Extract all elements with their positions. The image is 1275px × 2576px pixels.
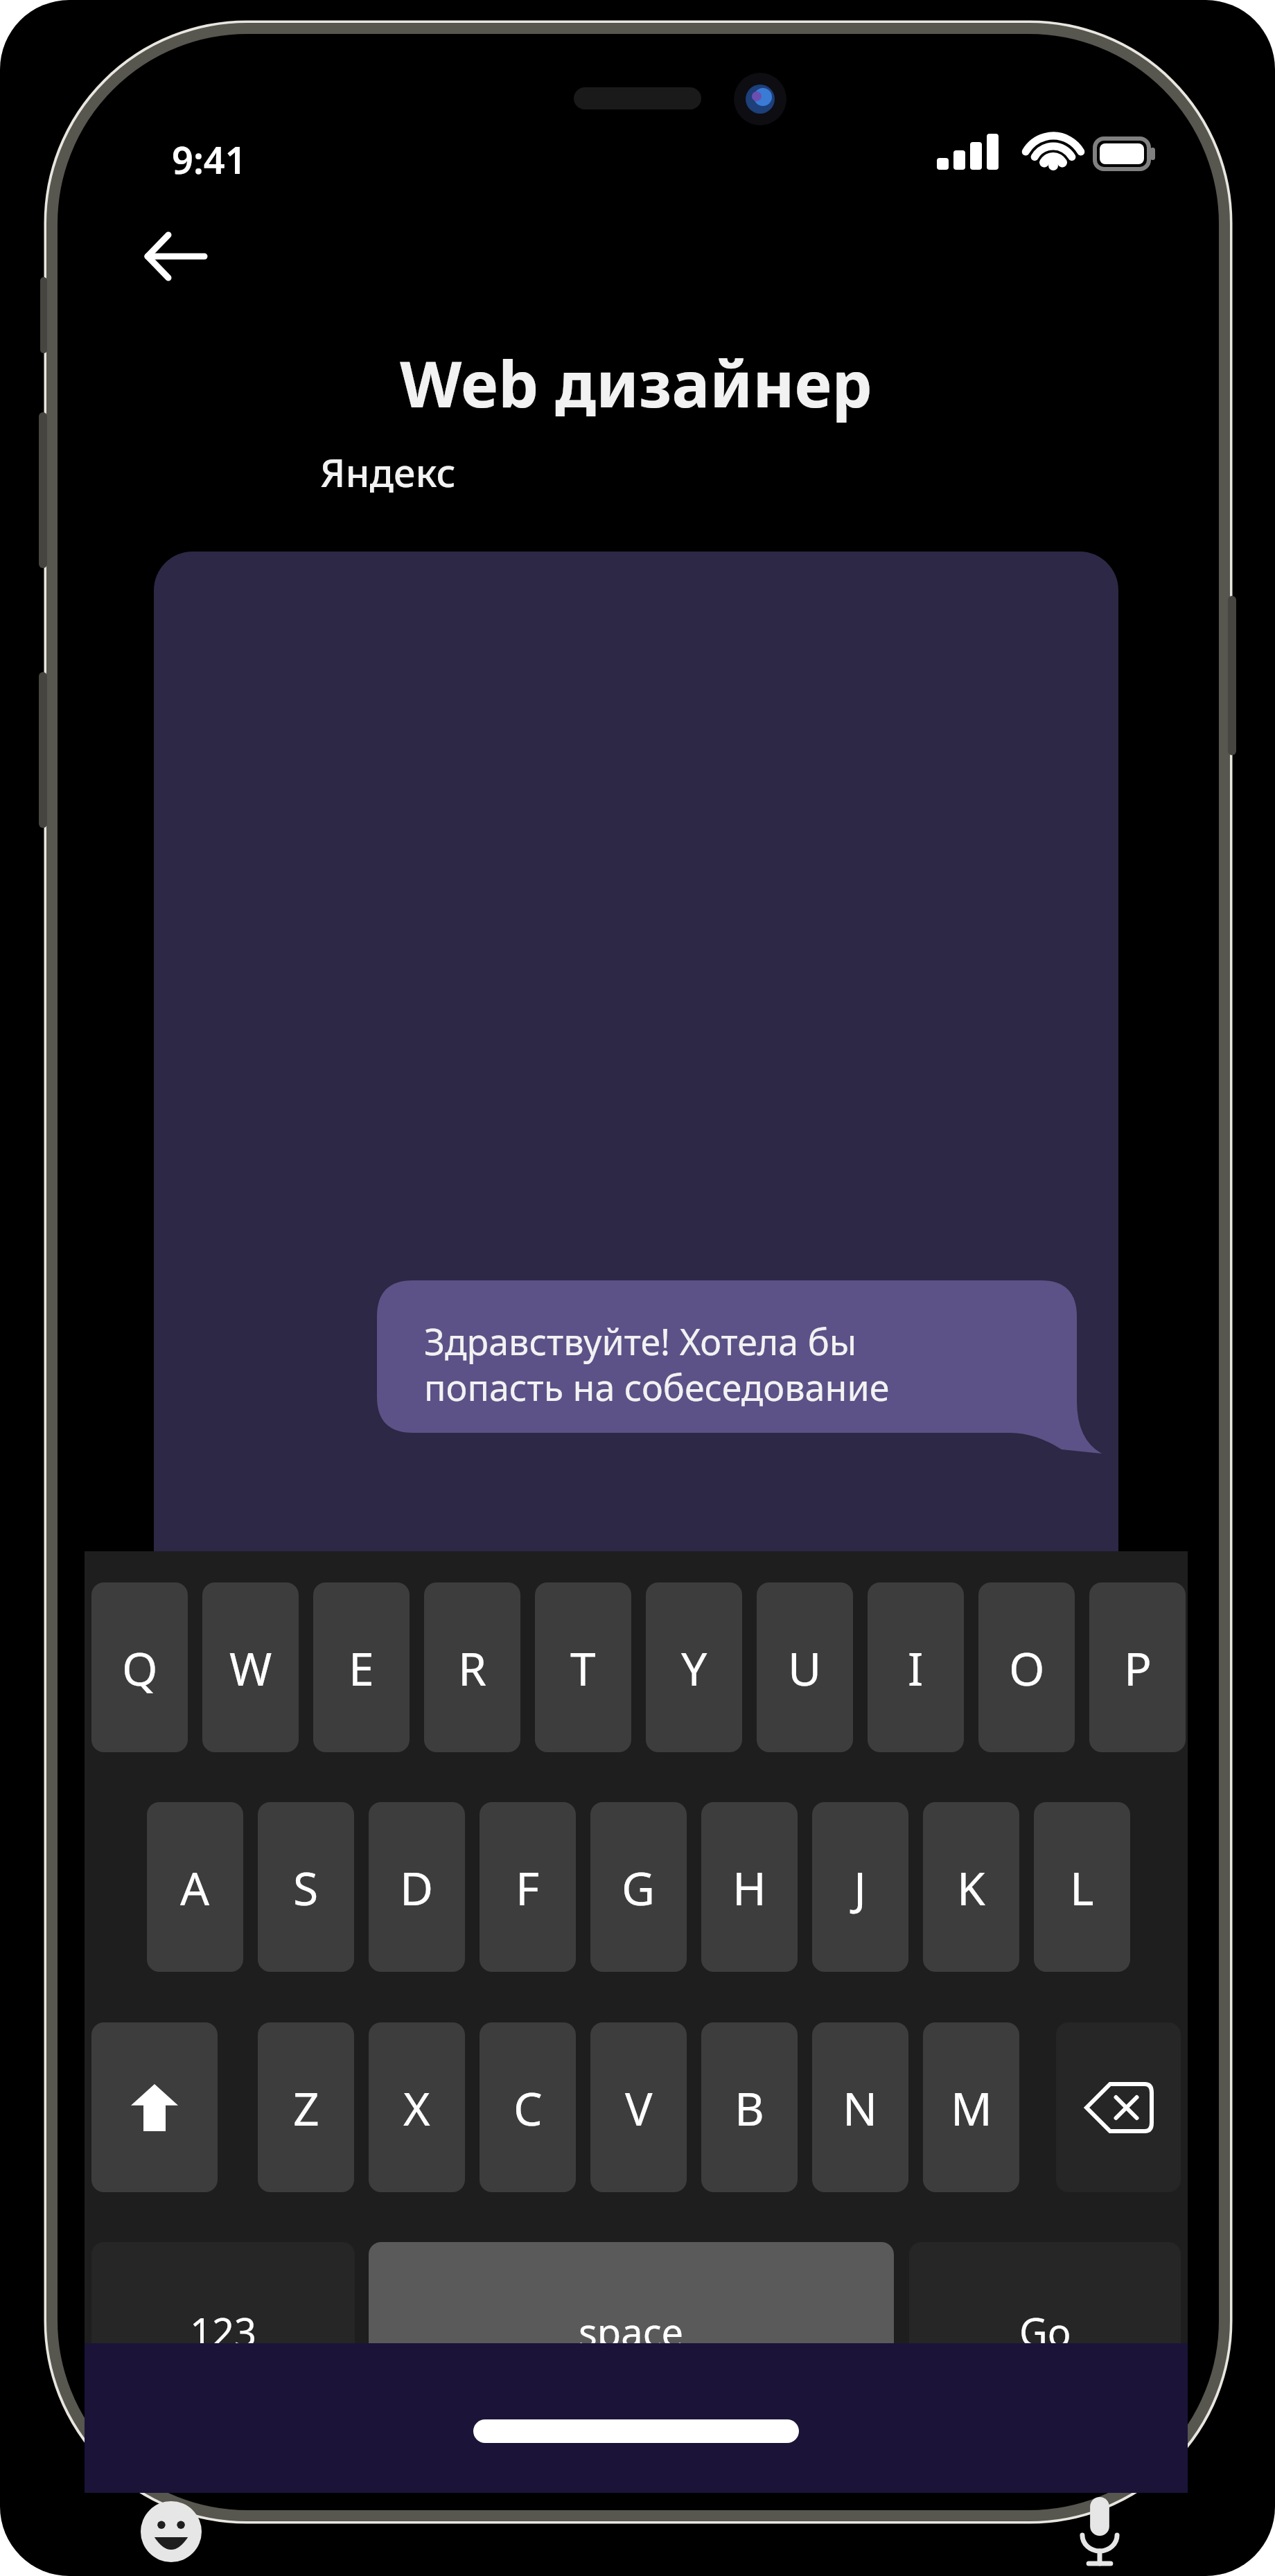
button[interactable]: Go — [909, 2242, 1181, 2421]
staticText: O — [1009, 1637, 1045, 1699]
staticText: Здравствуйте! Хотела бы попасть на собес… — [424, 1316, 890, 1411]
button[interactable]: X — [369, 2022, 465, 2192]
button[interactable]: S — [258, 1802, 354, 1972]
button[interactable]: Emoji — [119, 2480, 223, 2576]
staticText: T — [570, 1637, 596, 1699]
button[interactable]: O — [978, 1582, 1075, 1752]
button[interactable]: L — [1034, 1802, 1130, 1972]
staticText: I — [908, 1637, 924, 1699]
staticText: space — [579, 2305, 684, 2358]
staticText: X — [403, 2076, 430, 2139]
button[interactable]: B — [701, 2022, 798, 2192]
button[interactable]: Back — [121, 201, 231, 312]
button[interactable]: U — [757, 1582, 853, 1752]
staticText: K — [957, 1856, 985, 1918]
staticText: U — [788, 1637, 822, 1699]
staticText: R — [458, 1637, 487, 1699]
staticText: C — [513, 2076, 543, 2139]
staticText: Y — [681, 1637, 707, 1699]
button[interactable]: Z — [258, 2022, 354, 2192]
staticText: Z — [293, 2076, 319, 2139]
staticText: Яндекс — [320, 445, 456, 498]
button[interactable]: A — [147, 1802, 243, 1972]
button[interactable]: G — [590, 1802, 687, 1972]
staticText: N — [843, 2076, 878, 2139]
button[interactable]: D — [369, 1802, 465, 1972]
button[interactable]: I — [868, 1582, 964, 1752]
button[interactable]: C — [480, 2022, 576, 2192]
button[interactable]: Voice input — [1048, 2480, 1152, 2576]
staticText: 9:41 — [172, 134, 247, 185]
staticText: F — [516, 1856, 540, 1918]
staticText: V — [625, 2076, 653, 2139]
button[interactable]: M — [923, 2022, 1019, 2192]
staticText: P — [1124, 1637, 1152, 1699]
button[interactable]: W — [202, 1582, 299, 1752]
staticText: A — [180, 1856, 210, 1918]
button[interactable]: P — [1089, 1582, 1186, 1752]
staticText: Q — [122, 1637, 158, 1699]
button[interactable]: Shift — [91, 2022, 218, 2192]
button[interactable]: R — [424, 1582, 520, 1752]
button[interactable]: H — [701, 1802, 798, 1972]
staticText: 123 — [190, 2305, 257, 2358]
button[interactable]: T — [535, 1582, 631, 1752]
button[interactable]: Q — [91, 1582, 188, 1752]
staticText: S — [293, 1856, 319, 1918]
staticText: Web дизайнер — [85, 339, 1188, 426]
button[interactable]: F — [480, 1802, 576, 1972]
staticText: W — [229, 1637, 272, 1699]
staticText: H — [732, 1856, 766, 1918]
staticText: E — [349, 1637, 374, 1699]
staticText: B — [735, 2076, 764, 2139]
staticText: G — [622, 1856, 656, 1918]
button[interactable]: Y — [646, 1582, 742, 1752]
staticText: D — [400, 1856, 434, 1918]
button[interactable]: J — [812, 1802, 908, 1972]
button[interactable]: K — [923, 1802, 1019, 1972]
staticText: L — [1070, 1856, 1094, 1918]
button[interactable]: N — [812, 2022, 908, 2192]
button[interactable]: 123 — [91, 2242, 355, 2421]
staticText: J — [854, 1856, 867, 1918]
staticText: M — [951, 2076, 992, 2139]
button[interactable]: space — [369, 2242, 894, 2421]
button[interactable]: V — [590, 2022, 687, 2192]
button[interactable]: Backspace — [1056, 2022, 1181, 2192]
staticText: Go — [1019, 2305, 1071, 2358]
button[interactable]: E — [313, 1582, 410, 1752]
